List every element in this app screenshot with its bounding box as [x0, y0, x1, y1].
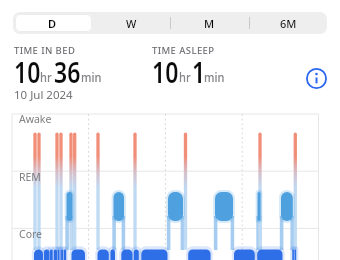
button[interactable]	[306, 68, 327, 89]
staticText: W	[126, 16, 137, 31]
button[interactable]	[15, 14, 92, 32]
button[interactable]: D	[13, 12, 92, 34]
staticText: min	[81, 68, 101, 86]
staticText: Awake	[19, 112, 52, 126]
staticText: TIME IN BED	[14, 44, 76, 57]
button[interactable]: 6M	[249, 12, 327, 34]
staticText: D	[48, 16, 57, 31]
staticText: TIME ASLEEP	[152, 44, 215, 57]
staticText: 36	[54, 53, 81, 91]
button[interactable]: M	[170, 12, 249, 34]
staticText: hr	[40, 68, 52, 86]
staticText: hr	[179, 68, 191, 86]
staticText: 10 Jul 2024	[14, 87, 73, 103]
staticText: 10	[14, 53, 41, 91]
staticText: M	[204, 16, 215, 31]
staticText: 1	[192, 53, 206, 91]
staticText: 10	[152, 53, 179, 91]
staticText: Core	[19, 227, 43, 241]
staticText: min	[204, 68, 224, 86]
staticText: 6M	[280, 16, 297, 31]
staticText: REM	[19, 170, 41, 184]
button[interactable]: W	[92, 12, 171, 34]
